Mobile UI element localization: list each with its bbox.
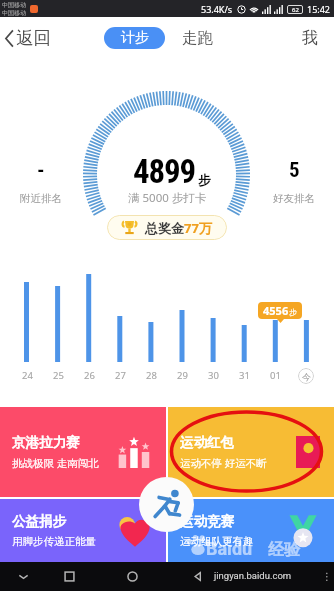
button[interactable]: Back	[180, 562, 216, 591]
staticText: -	[37, 158, 45, 183]
staticText: 步	[289, 307, 297, 317]
staticText: 77万	[184, 219, 212, 237]
staticText: 62	[292, 6, 299, 14]
staticText: 31	[239, 369, 250, 382]
button[interactable]: 公益捐步	[0, 499, 166, 562]
button[interactable]: 计步	[104, 27, 165, 49]
button[interactable]: 走跑	[176, 27, 219, 49]
staticText: 中国移动	[2, 1, 26, 9]
staticText: 26	[84, 369, 95, 382]
staticText: 公益捐步	[12, 513, 66, 530]
staticText: 步	[198, 172, 211, 188]
staticText: 27	[115, 369, 126, 382]
staticText: 今	[302, 371, 311, 382]
button[interactable]: Recent apps	[51, 562, 87, 591]
button[interactable]: 运动竞赛	[168, 499, 334, 562]
staticText: 28	[146, 369, 157, 382]
button[interactable]: Home	[114, 562, 150, 591]
staticText: 计步	[121, 29, 149, 47]
staticText: 5	[289, 158, 300, 183]
button[interactable]: 今	[298, 368, 314, 384]
staticText: Baidu	[206, 538, 253, 559]
staticText: 运动组队更有趣	[180, 535, 254, 548]
staticText: 运动竞赛	[180, 513, 234, 530]
staticText: 30	[208, 369, 219, 382]
staticText: 53.4K/s	[201, 3, 233, 15]
staticText: 总奖金	[145, 220, 184, 236]
button[interactable]: Hide keyboard	[5, 562, 41, 591]
staticText: 经验	[268, 540, 300, 560]
button[interactable]: 京港拉力赛	[0, 407, 166, 497]
staticText: 24	[22, 369, 33, 382]
staticText: 25	[53, 369, 64, 382]
button[interactable]: Start running	[139, 477, 194, 532]
staticText: 中国移动	[2, 9, 26, 17]
staticText: 运动不停 好运不断	[180, 456, 267, 470]
staticText: jingyan.baidu.com	[214, 570, 292, 581]
staticText: 好友排名	[273, 192, 315, 205]
staticText: 用脚步传递正能量	[12, 535, 96, 548]
staticText: 附近排名	[20, 192, 62, 205]
staticText: 挑战极限 走南闯北	[12, 456, 99, 470]
staticText: 4899	[133, 152, 195, 191]
staticText: 4556	[263, 303, 289, 318]
staticText: 我	[302, 28, 318, 48]
staticText: ⋮	[322, 571, 332, 583]
staticText: 15:42	[307, 3, 331, 15]
staticText: 走跑	[182, 28, 213, 48]
button[interactable]: 我	[292, 25, 328, 51]
staticText: 返回	[16, 27, 51, 49]
staticText: 满 5000 步打卡	[128, 190, 207, 206]
staticText: 运动红包	[180, 434, 234, 451]
staticText: 01	[270, 369, 281, 382]
button[interactable]: 总奖金	[107, 215, 227, 240]
button[interactable]: 返回	[0, 24, 61, 52]
staticText: 京港拉力赛	[12, 434, 80, 451]
button[interactable]: 运动红包	[168, 407, 334, 497]
staticText: 29	[177, 369, 188, 382]
